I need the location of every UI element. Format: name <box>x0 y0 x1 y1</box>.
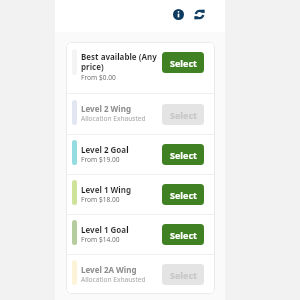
staticText: From $19.00 <box>81 155 120 164</box>
button[interactable]: Level 1 Wing <box>66 175 215 214</box>
staticText: From $18.00 <box>81 195 120 204</box>
staticText: Select <box>170 149 197 161</box>
button[interactable]: Level 2 Goal <box>66 135 215 174</box>
staticText: Level 2 Wing <box>81 103 131 114</box>
staticText: Select <box>170 57 197 69</box>
button[interactable]: Information <box>168 4 188 24</box>
staticText: Level 2A Wing <box>81 264 137 275</box>
button[interactable]: Select <box>162 264 204 285</box>
staticText: Allocation Exhausted <box>81 275 146 284</box>
staticText: Level 1 Wing <box>81 184 131 195</box>
button[interactable]: Refresh <box>189 4 209 24</box>
staticText: Select <box>170 189 197 201</box>
button[interactable]: Select <box>162 184 204 205</box>
staticText: Level 2 Goal <box>81 144 129 155</box>
button[interactable]: Level 2 Wing <box>66 94 215 134</box>
button[interactable]: Select <box>162 52 204 73</box>
staticText: Select <box>170 269 197 281</box>
staticText: Select <box>170 229 197 241</box>
staticText: Level 1 Goal <box>81 224 129 235</box>
staticText: Allocation Exhausted <box>81 114 146 123</box>
staticText: Select <box>170 109 197 121</box>
staticText: From $14.00 <box>81 235 120 244</box>
button[interactable]: Level 1 Goal <box>66 215 215 254</box>
button[interactable]: Best available (Any price) <box>66 42 215 93</box>
staticText: Best available (Any price) <box>81 51 160 73</box>
button[interactable]: Select <box>162 224 204 245</box>
button[interactable]: Select <box>162 144 204 165</box>
button[interactable]: Level 2A Wing <box>66 255 215 294</box>
button[interactable]: Select <box>162 104 204 125</box>
staticText: From $0.00 <box>81 73 116 82</box>
